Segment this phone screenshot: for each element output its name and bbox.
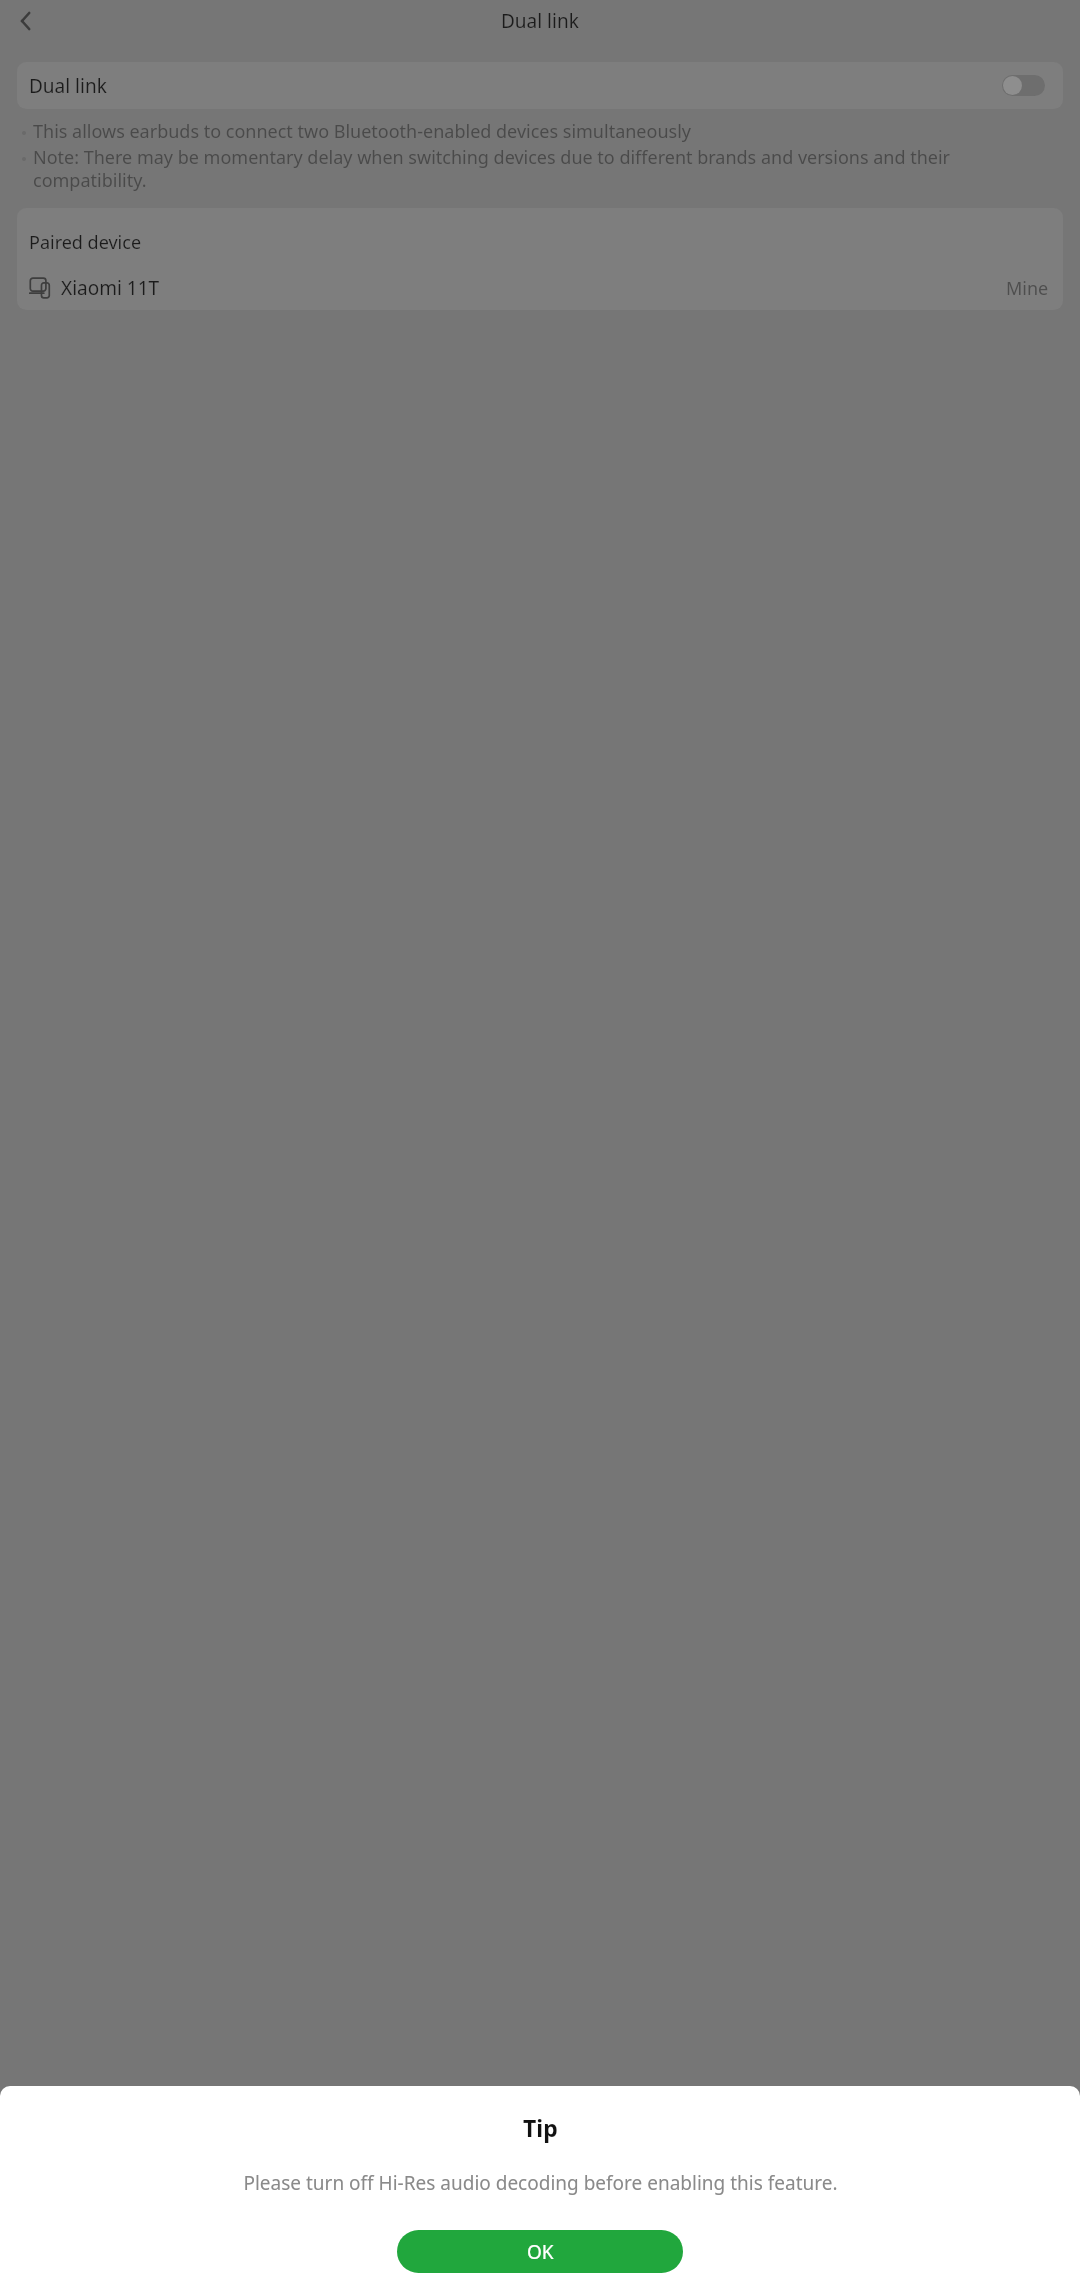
staticText: Tip: [523, 2112, 558, 2143]
button[interactable]: Dual link toggle: [1002, 75, 1045, 96]
button[interactable]: Xiaomi 11T: [17, 266, 1063, 310]
staticText: OK: [527, 2239, 554, 2265]
staticText: Note: There may be momentary delay when …: [33, 145, 1063, 192]
staticText: This allows earbuds to connect two Bluet…: [33, 119, 691, 144]
button[interactable]: Back: [8, 3, 44, 39]
staticText: Dual link: [29, 73, 107, 99]
staticText: Mine: [1006, 276, 1049, 301]
staticText: Please turn off Hi-Res audio decoding be…: [243, 2170, 838, 2196]
staticText: Paired device: [29, 230, 142, 255]
button[interactable]: Dual link: [17, 62, 1063, 109]
button[interactable]: OK: [397, 2230, 683, 2273]
staticText: Dual link: [501, 8, 579, 34]
staticText: Xiaomi 11T: [61, 275, 160, 301]
